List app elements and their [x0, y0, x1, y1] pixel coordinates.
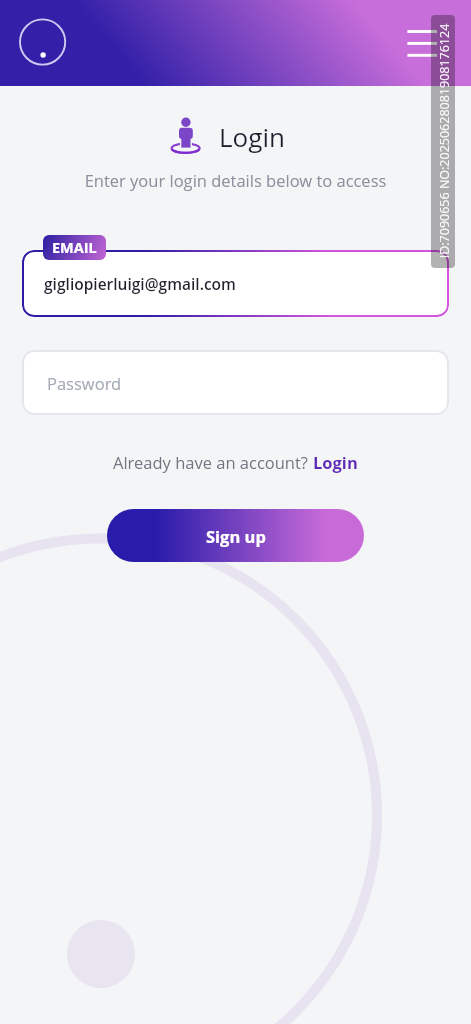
- staticText: EMAIL: [52, 238, 97, 258]
- button[interactable]: Logo: [18, 17, 68, 67]
- button[interactable]: Sign up: [107, 509, 364, 562]
- staticText: Already have an account?: [113, 451, 313, 473]
- button[interactable]: Password: [22, 350, 449, 415]
- button[interactable]: EMAIL: [43, 235, 106, 260]
- staticText: Sign up: [206, 525, 266, 547]
- staticText: Password: [47, 372, 122, 394]
- staticText: Login: [219, 119, 285, 154]
- staticText: ID:7090656 NO:20250628081908176124: [435, 23, 452, 258]
- staticText: Enter your login details below to access: [0, 169, 471, 191]
- staticText: gigliopierluigi@gmail.com: [44, 273, 236, 294]
- staticText: Login: [313, 451, 358, 473]
- button[interactable]: Login: [313, 451, 358, 473]
- button[interactable]: gigliopierluigi@gmail.com: [22, 250, 449, 317]
- button[interactable]: Menu: [402, 24, 442, 62]
